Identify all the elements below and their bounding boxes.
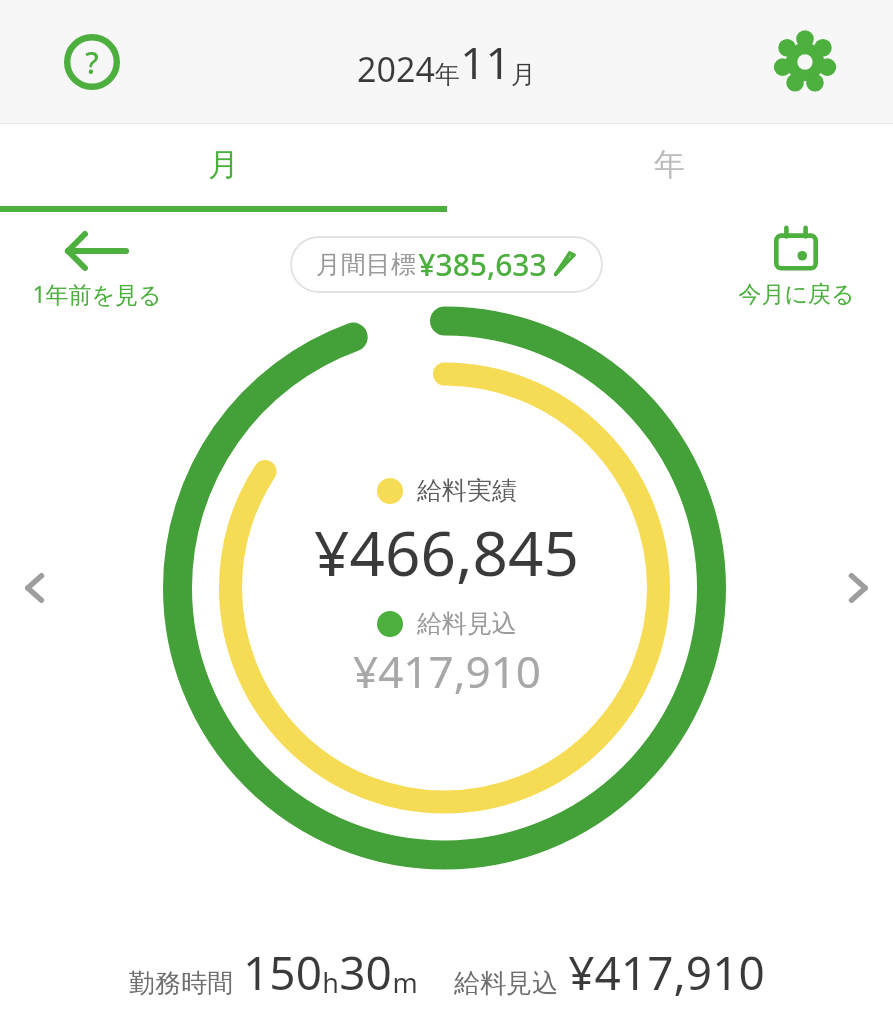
button[interactable]: Previous month — [0, 553, 70, 623]
button[interactable]: 月間目標 — [290, 236, 603, 293]
button[interactable]: Settings — [769, 26, 841, 98]
button[interactable]: Next month — [823, 553, 893, 623]
staticText: ¥466,845 — [314, 510, 579, 594]
staticText: 月 — [511, 59, 536, 90]
staticText: 年 — [654, 145, 685, 184]
staticText: 月間目標 — [316, 249, 416, 280]
button[interactable]: Help — [56, 26, 128, 98]
staticText: 給料実績 — [417, 475, 517, 506]
staticText: 1年前を見る — [32, 278, 162, 309]
staticText: 給料見込 — [417, 608, 517, 639]
staticText: 勤務時間 — [129, 967, 233, 1000]
button[interactable]: 今月に戻る — [721, 226, 871, 309]
staticText: 11 — [460, 32, 511, 92]
staticText: ? — [85, 42, 99, 83]
staticText: 150 — [243, 941, 322, 1004]
staticText: 2024 — [357, 46, 435, 92]
staticText: ¥417,910 — [353, 641, 541, 701]
staticText: 今月に戻る — [738, 280, 855, 309]
staticText: 月 — [208, 145, 239, 184]
staticText: h — [322, 964, 339, 1001]
staticText: ¥385,633 — [418, 244, 547, 285]
staticText: 給料見込 — [454, 967, 558, 1000]
button[interactable]: 年 — [446, 124, 893, 212]
button[interactable]: 月 — [0, 124, 446, 212]
staticText: ¥417,910 — [568, 941, 765, 1004]
staticText: 30 — [339, 941, 392, 1004]
staticText: m — [392, 964, 418, 1001]
button[interactable]: 1年前を見る — [22, 230, 172, 309]
staticText: 年 — [435, 59, 460, 90]
